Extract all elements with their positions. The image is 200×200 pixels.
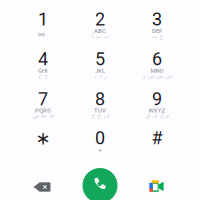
staticText: 1 <box>38 9 48 30</box>
staticText: JKL <box>95 67 105 74</box>
staticText: ج ث <box>151 32 163 39</box>
staticText: خ ح <box>38 72 48 79</box>
staticText: 2 <box>95 9 105 30</box>
staticText: # <box>151 128 162 149</box>
button[interactable]: 1 <box>15 10 70 38</box>
button[interactable]: 8 <box>72 90 127 118</box>
staticText: 4 <box>38 49 48 70</box>
staticText: 8 <box>95 88 105 110</box>
button[interactable]: Call <box>82 168 117 200</box>
button[interactable]: 5 <box>72 50 127 78</box>
staticText: ص ش س ز <box>142 72 172 79</box>
staticText: 0 <box>95 128 105 149</box>
staticText: TUV <box>94 107 106 114</box>
staticText: + <box>98 146 101 153</box>
staticText: DEF <box>152 27 162 34</box>
staticText: ظ ط ض <box>31 112 54 119</box>
button[interactable]: # <box>129 129 184 157</box>
staticText: ت ب ا <box>91 32 109 39</box>
staticText: GHI <box>38 67 48 74</box>
button[interactable]: 2 <box>72 10 127 38</box>
staticText: WXYZ <box>148 107 165 114</box>
button[interactable]: 3 <box>129 10 184 38</box>
staticText: 5 <box>95 49 105 70</box>
button[interactable]: 4 <box>15 50 70 78</box>
staticText: MNO <box>150 67 163 74</box>
button[interactable]: Delete <box>25 175 59 199</box>
button[interactable]: 7 <box>15 90 70 118</box>
staticText: ABC <box>94 27 106 34</box>
button[interactable]: Video call <box>141 174 171 198</box>
button[interactable]: 6 <box>129 50 184 78</box>
staticText: 7 <box>38 88 48 110</box>
staticText: 9 <box>152 88 162 110</box>
button[interactable]: 9 <box>129 90 184 118</box>
staticText: ∗ <box>35 128 50 149</box>
staticText: ر ذ د <box>93 72 106 79</box>
button[interactable]: 0 <box>72 129 127 157</box>
staticText: ف غ ع <box>91 112 109 119</box>
staticText: 3 <box>152 9 162 30</box>
staticText: PQRS <box>35 107 51 114</box>
staticText: 6 <box>152 49 162 70</box>
staticText: م ل ك ق <box>145 112 169 119</box>
button[interactable]: ∗ <box>15 129 70 157</box>
